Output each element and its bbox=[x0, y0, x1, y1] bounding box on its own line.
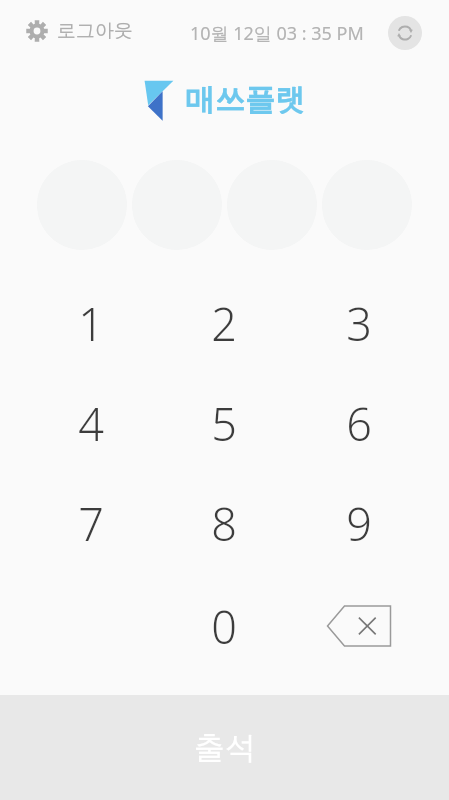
staticText: 10월 12일 03 : 35 PM bbox=[190, 21, 364, 46]
button[interactable]: 6 bbox=[302, 383, 415, 463]
staticText: 6 bbox=[346, 393, 372, 454]
button[interactable]: 9 bbox=[302, 483, 415, 563]
staticText: 매쓰플랫 bbox=[185, 81, 305, 119]
staticText: 로그아웃 bbox=[57, 19, 133, 43]
button[interactable]: 0 bbox=[167, 586, 280, 666]
staticText: 3 bbox=[346, 293, 372, 354]
button[interactable]: Refresh bbox=[388, 16, 422, 50]
button[interactable]: 2 bbox=[167, 283, 280, 363]
button[interactable]: 로그아웃 bbox=[20, 14, 139, 48]
staticText: 0 bbox=[211, 596, 237, 657]
staticText: 7 bbox=[78, 493, 104, 554]
button[interactable]: 4 bbox=[34, 383, 147, 463]
staticText: 출석 bbox=[194, 728, 256, 767]
staticText: 9 bbox=[346, 493, 372, 554]
staticText: 4 bbox=[78, 393, 104, 454]
staticText: 8 bbox=[211, 493, 237, 554]
button[interactable]: 3 bbox=[302, 283, 415, 363]
button[interactable]: 5 bbox=[167, 383, 280, 463]
staticText: 1 bbox=[78, 293, 104, 354]
button[interactable]: 8 bbox=[167, 483, 280, 563]
staticText: 5 bbox=[211, 393, 237, 454]
staticText: 2 bbox=[211, 293, 237, 354]
button[interactable]: Backspace bbox=[302, 586, 415, 666]
button[interactable]: 1 bbox=[34, 283, 147, 363]
button[interactable]: 7 bbox=[34, 483, 147, 563]
